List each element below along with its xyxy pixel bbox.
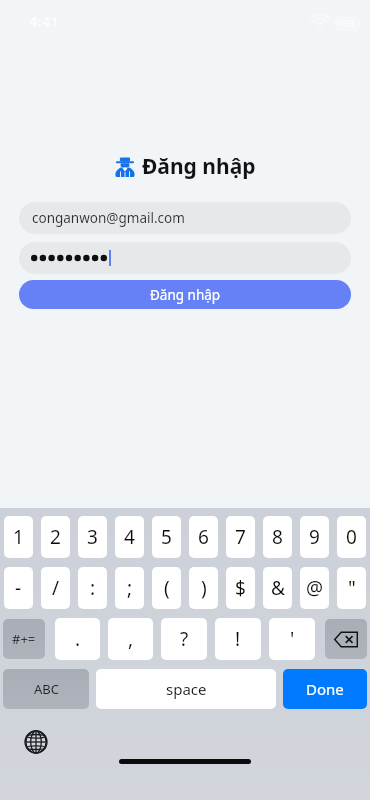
- button[interactable]: Backspace: [325, 619, 367, 659]
- button[interactable]: 2: [41, 516, 70, 558]
- button[interactable]: @: [300, 567, 329, 609]
- button[interactable]: ABC: [3, 669, 89, 709]
- staticText: 8: [272, 524, 283, 550]
- staticText: 0: [346, 524, 357, 550]
- button[interactable]: .: [55, 618, 100, 660]
- button[interactable]: Change keyboard language: [24, 730, 48, 754]
- staticText: 4: [124, 524, 135, 550]
- staticText: 6: [198, 524, 209, 550]
- staticText: 2: [50, 524, 61, 550]
- button[interactable]: /: [41, 567, 70, 609]
- button[interactable]: #+=: [3, 619, 45, 659]
- button[interactable]: ;: [115, 567, 144, 609]
- button[interactable]: ): [189, 567, 218, 609]
- staticText: 1: [13, 524, 24, 550]
- button[interactable]: 0: [337, 516, 366, 558]
- staticText: conganwon@gmail.com: [32, 209, 185, 227]
- staticText: @: [306, 575, 324, 601]
- button[interactable]: conganwon@gmail.com: [19, 202, 351, 234]
- staticText: 7: [235, 524, 246, 550]
- staticText: Đăng nhập: [142, 152, 256, 181]
- button[interactable]: Done: [283, 669, 367, 709]
- button[interactable]: 6: [189, 516, 218, 558]
- button[interactable]: Đăng nhập: [19, 280, 351, 309]
- button[interactable]: -: [4, 567, 33, 609]
- button[interactable]: &: [263, 567, 292, 609]
- button[interactable]: 5: [152, 516, 181, 558]
- staticText: (: [164, 575, 170, 601]
- staticText: /: [52, 575, 60, 601]
- staticText: .: [75, 626, 81, 652]
- button[interactable]: 3: [78, 516, 107, 558]
- button[interactable]: 1: [4, 516, 33, 558]
- staticText: Done: [306, 679, 344, 699]
- staticText: 3: [87, 524, 98, 550]
- button[interactable]: [19, 242, 351, 274]
- staticText: 9: [309, 524, 320, 550]
- staticText: space: [166, 679, 207, 699]
- staticText: ): [201, 575, 207, 601]
- staticText: ,: [128, 626, 134, 652]
- button[interactable]: 7: [226, 516, 255, 558]
- staticText: Đăng nhập: [150, 286, 221, 304]
- button[interactable]: 9: [300, 516, 329, 558]
- button[interactable]: !: [215, 618, 261, 660]
- staticText: 4:41: [29, 11, 59, 31]
- staticText: :: [90, 575, 96, 601]
- button[interactable]: ?: [161, 618, 207, 660]
- staticText: !: [235, 626, 241, 652]
- staticText: ABC: [34, 680, 59, 698]
- staticText: ': [290, 626, 295, 652]
- staticText: &: [271, 575, 285, 601]
- button[interactable]: ,: [108, 618, 153, 660]
- staticText: #+=: [12, 630, 36, 648]
- button[interactable]: $: [226, 567, 255, 609]
- button[interactable]: :: [78, 567, 107, 609]
- staticText: ;: [127, 575, 133, 601]
- staticText: ": [348, 575, 356, 601]
- staticText: ?: [180, 626, 189, 652]
- button[interactable]: 4: [115, 516, 144, 558]
- button[interactable]: (: [152, 567, 181, 609]
- staticText: -: [15, 575, 22, 601]
- button[interactable]: space: [96, 669, 276, 709]
- button[interactable]: 8: [263, 516, 292, 558]
- staticText: 5: [161, 524, 172, 550]
- button[interactable]: ': [269, 618, 315, 660]
- staticText: $: [235, 575, 246, 601]
- button[interactable]: ": [337, 567, 366, 609]
